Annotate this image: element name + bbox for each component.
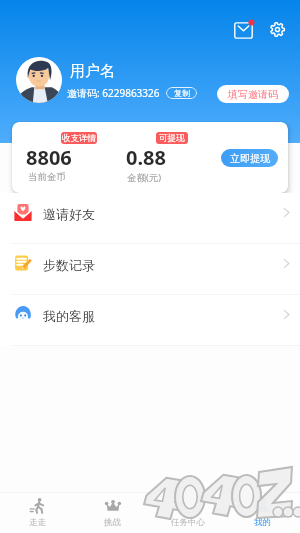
staticText: 8806 xyxy=(26,144,72,171)
button[interactable]: 邀请好友 xyxy=(0,193,300,243)
button[interactable]: 走走 xyxy=(0,493,75,533)
button[interactable]: 步数记录 xyxy=(0,244,300,294)
staticText: 走走 xyxy=(29,517,46,528)
button[interactable]: 填写邀请码 xyxy=(217,85,289,103)
staticText: 任务中心 xyxy=(171,517,205,528)
staticText: 步数记录 xyxy=(43,257,95,273)
button[interactable]: 复制 xyxy=(166,87,197,99)
staticText: 用户名 xyxy=(70,62,115,81)
button[interactable]: 我的客服 xyxy=(0,295,300,345)
staticText: 金额(元) xyxy=(127,171,162,184)
button[interactable]: Messages xyxy=(231,17,255,41)
staticText: 当前金币 xyxy=(28,171,66,183)
button[interactable]: 任务中心 xyxy=(150,493,225,533)
staticText: 我的客服 xyxy=(43,308,95,324)
staticText: 挑战 xyxy=(104,517,121,528)
staticText: 立即提现 xyxy=(230,152,270,165)
staticText: 复制 xyxy=(174,88,190,98)
button[interactable]: 收支详情 xyxy=(61,132,97,144)
staticText: 填写邀请码 xyxy=(228,88,278,101)
staticText: 收支详情 xyxy=(62,133,96,144)
button[interactable]: 立即提现 xyxy=(221,149,278,167)
staticText: 邀请码: 6229863326 xyxy=(67,86,160,100)
staticText: 我的 xyxy=(254,517,271,528)
staticText: 邀请好友 xyxy=(43,206,95,222)
button[interactable]: 挑战 xyxy=(75,493,150,533)
button[interactable]: 我的 xyxy=(225,493,300,533)
button[interactable]: 可提现 xyxy=(156,132,188,144)
button[interactable]: Settings xyxy=(265,17,289,41)
staticText: 可提现 xyxy=(159,133,185,144)
staticText: 0.88 xyxy=(126,144,166,171)
